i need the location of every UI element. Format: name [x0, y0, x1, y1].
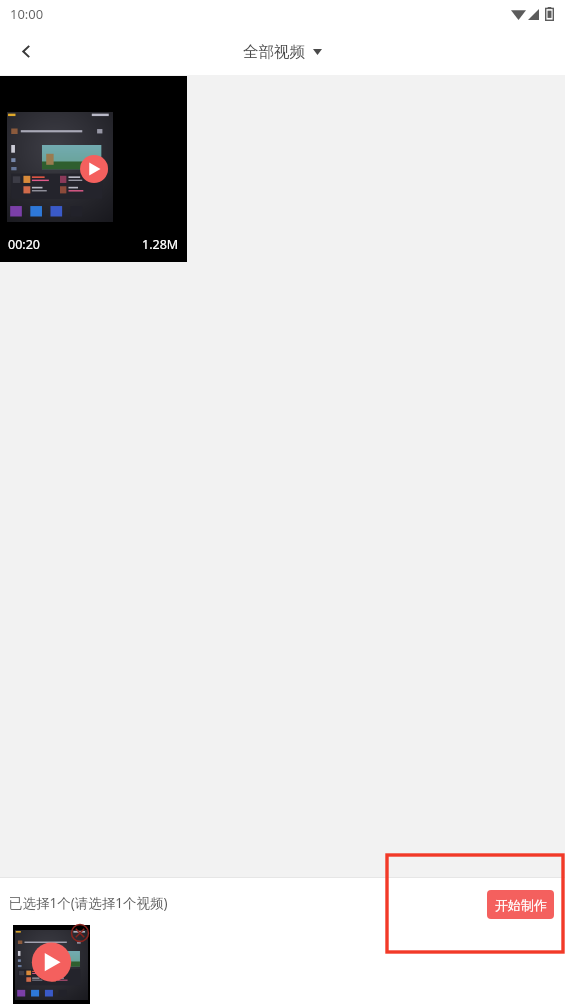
staticText: 1.28M: [142, 236, 179, 253]
button[interactable]: 开始制作: [487, 890, 554, 919]
button[interactable]: [13, 925, 90, 1004]
button[interactable]: Remove video: [70, 923, 90, 943]
button[interactable]: 全部视频: [237, 36, 328, 68]
staticText: 全部视频: [243, 42, 305, 62]
staticText: 开始制作: [495, 897, 547, 913]
staticText: 已选择1个(请选择1个视频): [9, 894, 168, 912]
button[interactable]: 00:20: [0, 76, 187, 262]
staticText: 10:00: [10, 5, 44, 23]
button[interactable]: Back: [0, 28, 52, 75]
staticText: 00:20: [8, 236, 40, 253]
